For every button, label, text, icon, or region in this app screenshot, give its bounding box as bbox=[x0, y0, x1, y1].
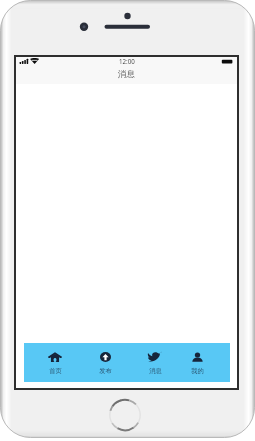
button[interactable]: 首页 bbox=[32, 343, 78, 382]
other: 消息 bbox=[148, 351, 162, 361]
staticText: 12:00 bbox=[119, 57, 135, 65]
staticText: 首页 bbox=[49, 367, 62, 375]
button[interactable]: 我的 bbox=[174, 343, 220, 382]
staticText: 消息 bbox=[118, 69, 136, 80]
staticText: 我的 bbox=[191, 367, 204, 375]
staticText: 消息 bbox=[149, 367, 162, 375]
button[interactable]: 消息 bbox=[132, 343, 178, 382]
button[interactable]: 发布 bbox=[82, 343, 128, 382]
other: 我的 bbox=[192, 352, 203, 362]
staticText: 发布 bbox=[99, 367, 112, 375]
other: 发布 bbox=[100, 352, 111, 362]
other: 首页 bbox=[48, 352, 62, 362]
